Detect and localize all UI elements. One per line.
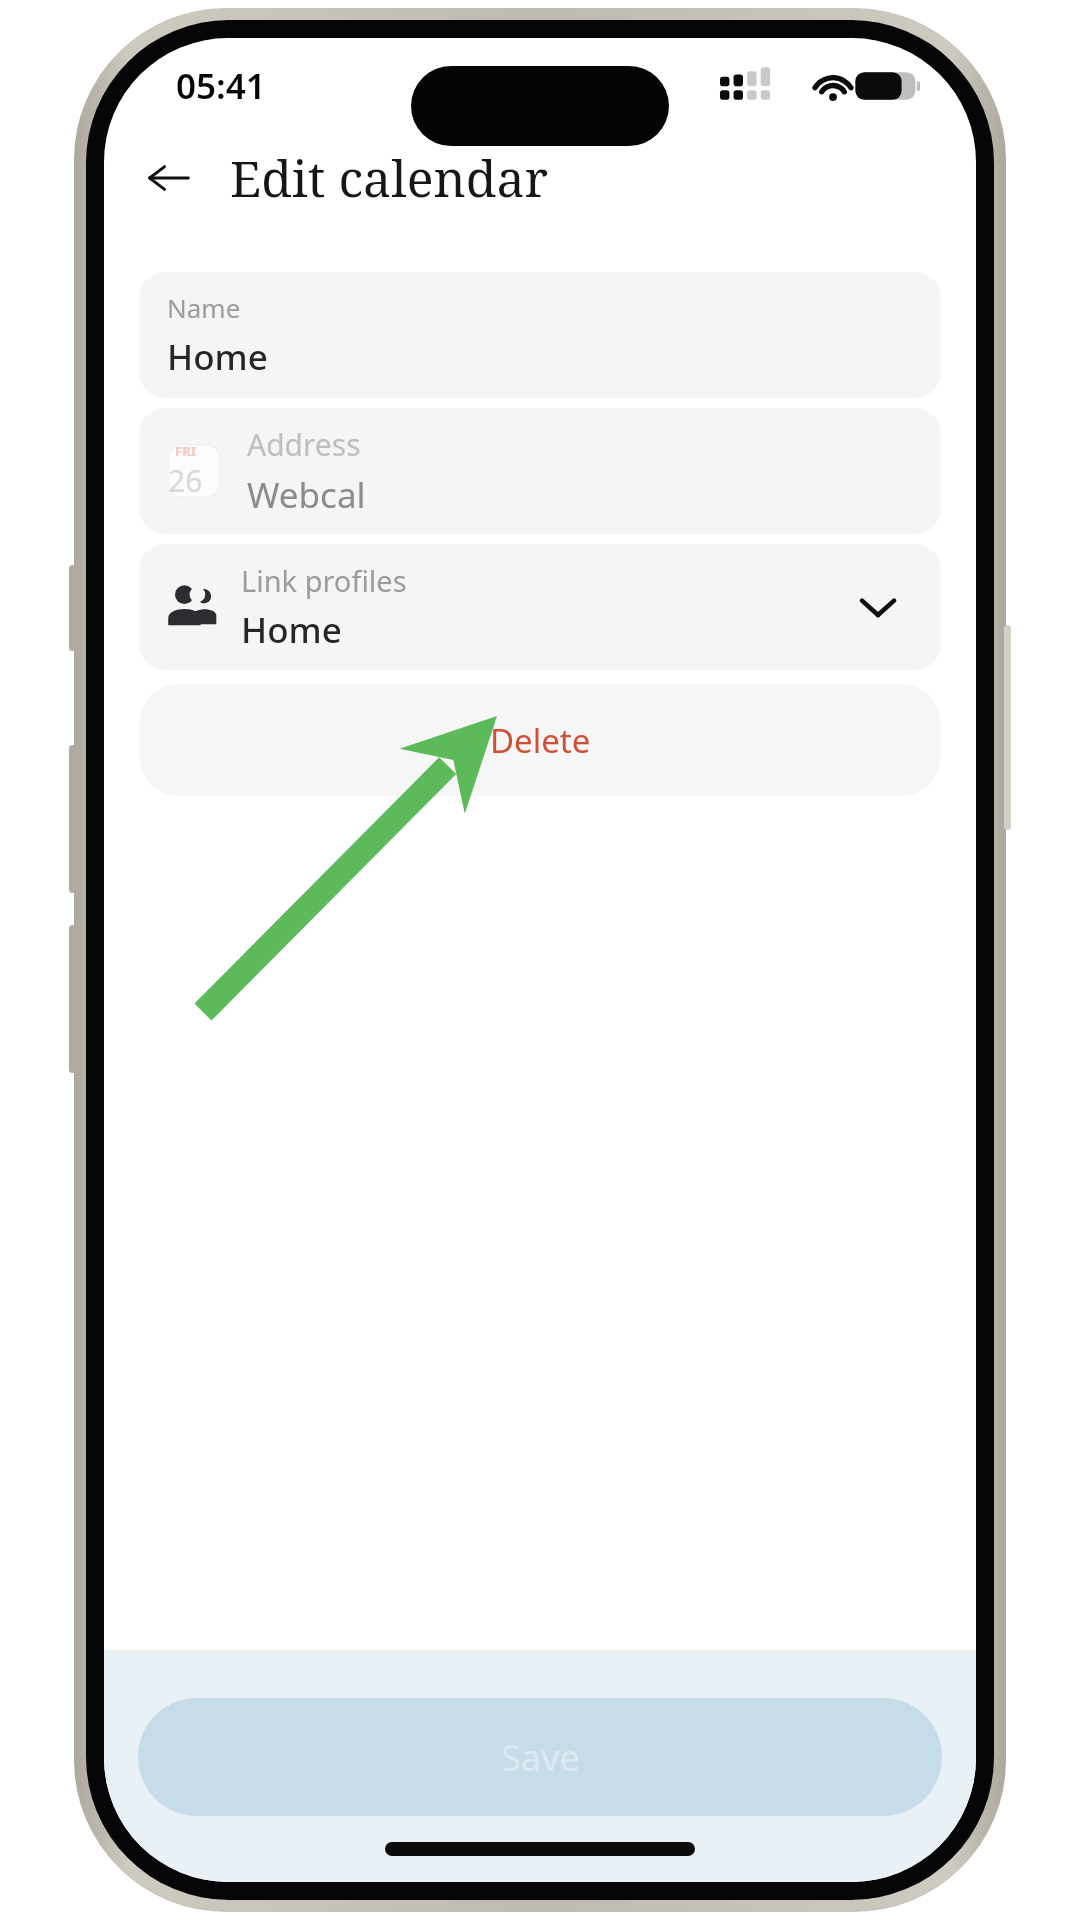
staticText: Webcal: [247, 471, 366, 519]
staticText: 05:41: [176, 62, 266, 110]
staticText: Link profiles: [241, 561, 407, 600]
staticText: Home: [167, 333, 268, 381]
staticText: Address: [247, 424, 361, 465]
button[interactable]: Expand: [849, 578, 907, 636]
staticText: FRI: [175, 442, 196, 460]
button[interactable]: Back: [132, 141, 206, 215]
button[interactable]: Link profiles: [139, 544, 941, 670]
staticText: Name: [167, 290, 241, 325]
button[interactable]: Address: [139, 408, 941, 534]
button[interactable]: Name: [139, 272, 941, 398]
button[interactable]: Save: [138, 1698, 942, 1816]
staticText: Edit calendar: [230, 144, 549, 212]
staticText: Home: [241, 606, 342, 654]
staticText: Save: [501, 1733, 580, 1782]
staticText: 26: [168, 460, 203, 501]
staticText: Delete: [490, 718, 591, 763]
button[interactable]: Delete: [139, 684, 941, 796]
